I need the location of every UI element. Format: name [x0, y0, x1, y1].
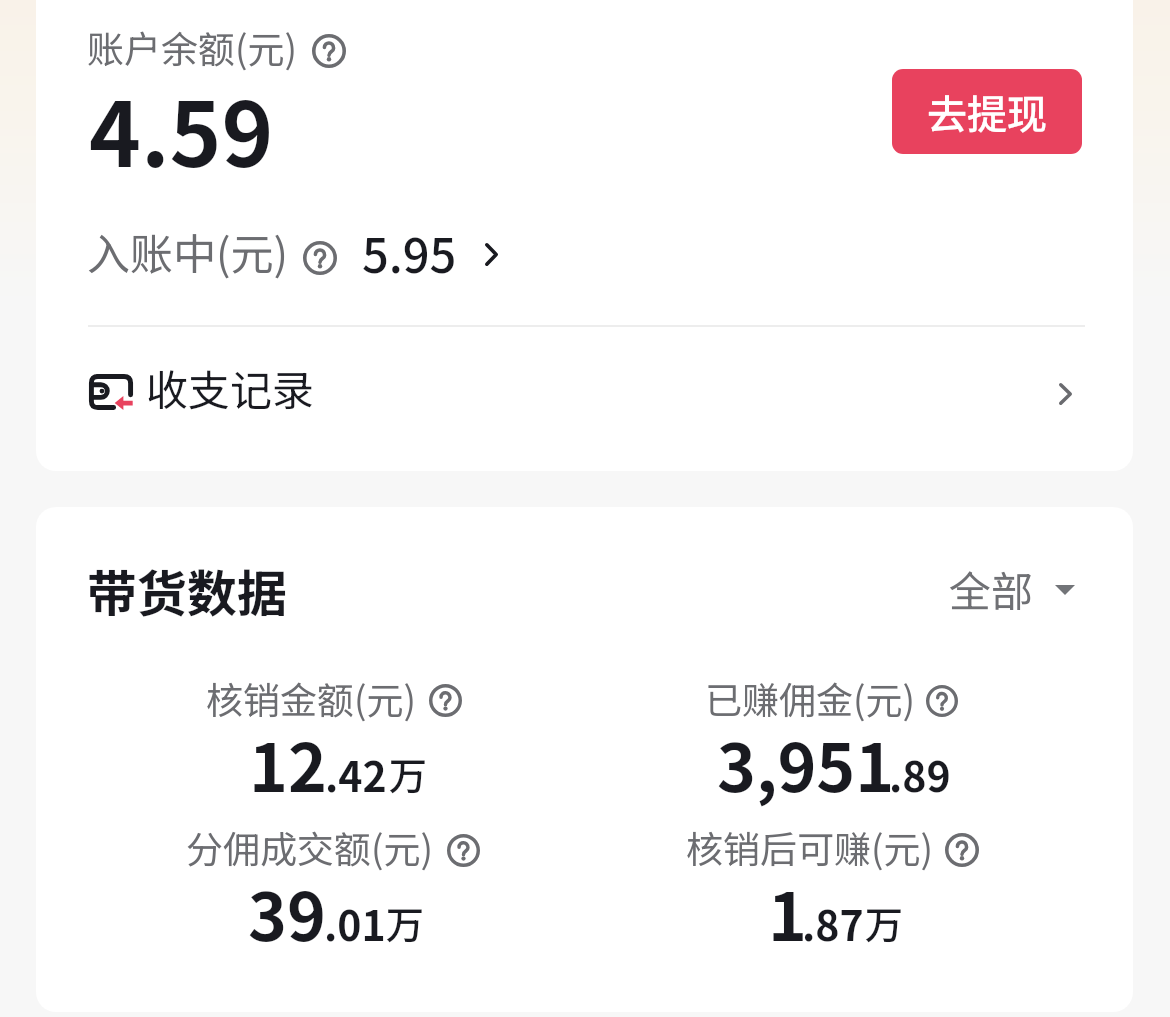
- button[interactable]: 收支记录: [36, 340, 1133, 465]
- staticText: 万: [389, 746, 428, 801]
- staticText: 收支记录: [146, 357, 315, 418]
- staticText: .87: [802, 893, 864, 952]
- staticText: 3,951: [717, 715, 895, 811]
- button[interactable]: 去提现: [892, 69, 1082, 154]
- staticText: 4.59: [89, 65, 274, 192]
- staticText: 账户余额(元): [87, 20, 298, 74]
- button[interactable]: 核销后可赚(元): [672, 811, 993, 877]
- staticText: 带货数据: [87, 554, 287, 626]
- staticText: .42: [325, 744, 387, 803]
- staticText: 1: [768, 864, 807, 960]
- button[interactable]: 已赚佣金(元): [691, 662, 972, 728]
- staticText: 去提现: [927, 83, 1047, 141]
- button[interactable]: 入账中(元): [80, 220, 560, 290]
- button[interactable]: 核销金额(元): [192, 662, 476, 728]
- staticText: .89: [889, 744, 951, 803]
- staticText: 12: [249, 715, 327, 811]
- staticText: 已赚佣金(元): [705, 671, 916, 725]
- button[interactable]: 全部: [932, 557, 1122, 623]
- button[interactable]: 分佣成交额(元): [172, 811, 494, 877]
- staticText: 核销金额(元): [206, 671, 417, 725]
- staticText: 全部: [949, 558, 1034, 619]
- staticText: 万: [865, 895, 904, 950]
- staticText: 分佣成交额(元): [186, 820, 434, 874]
- staticText: 万: [386, 895, 425, 950]
- staticText: 入账中(元): [87, 220, 289, 282]
- staticText: .01: [324, 893, 386, 952]
- staticText: 5.95: [362, 218, 457, 286]
- staticText: 核销后可赚(元): [686, 820, 934, 874]
- staticText: 39: [248, 864, 326, 960]
- other: 收支记录: [89, 374, 133, 410]
